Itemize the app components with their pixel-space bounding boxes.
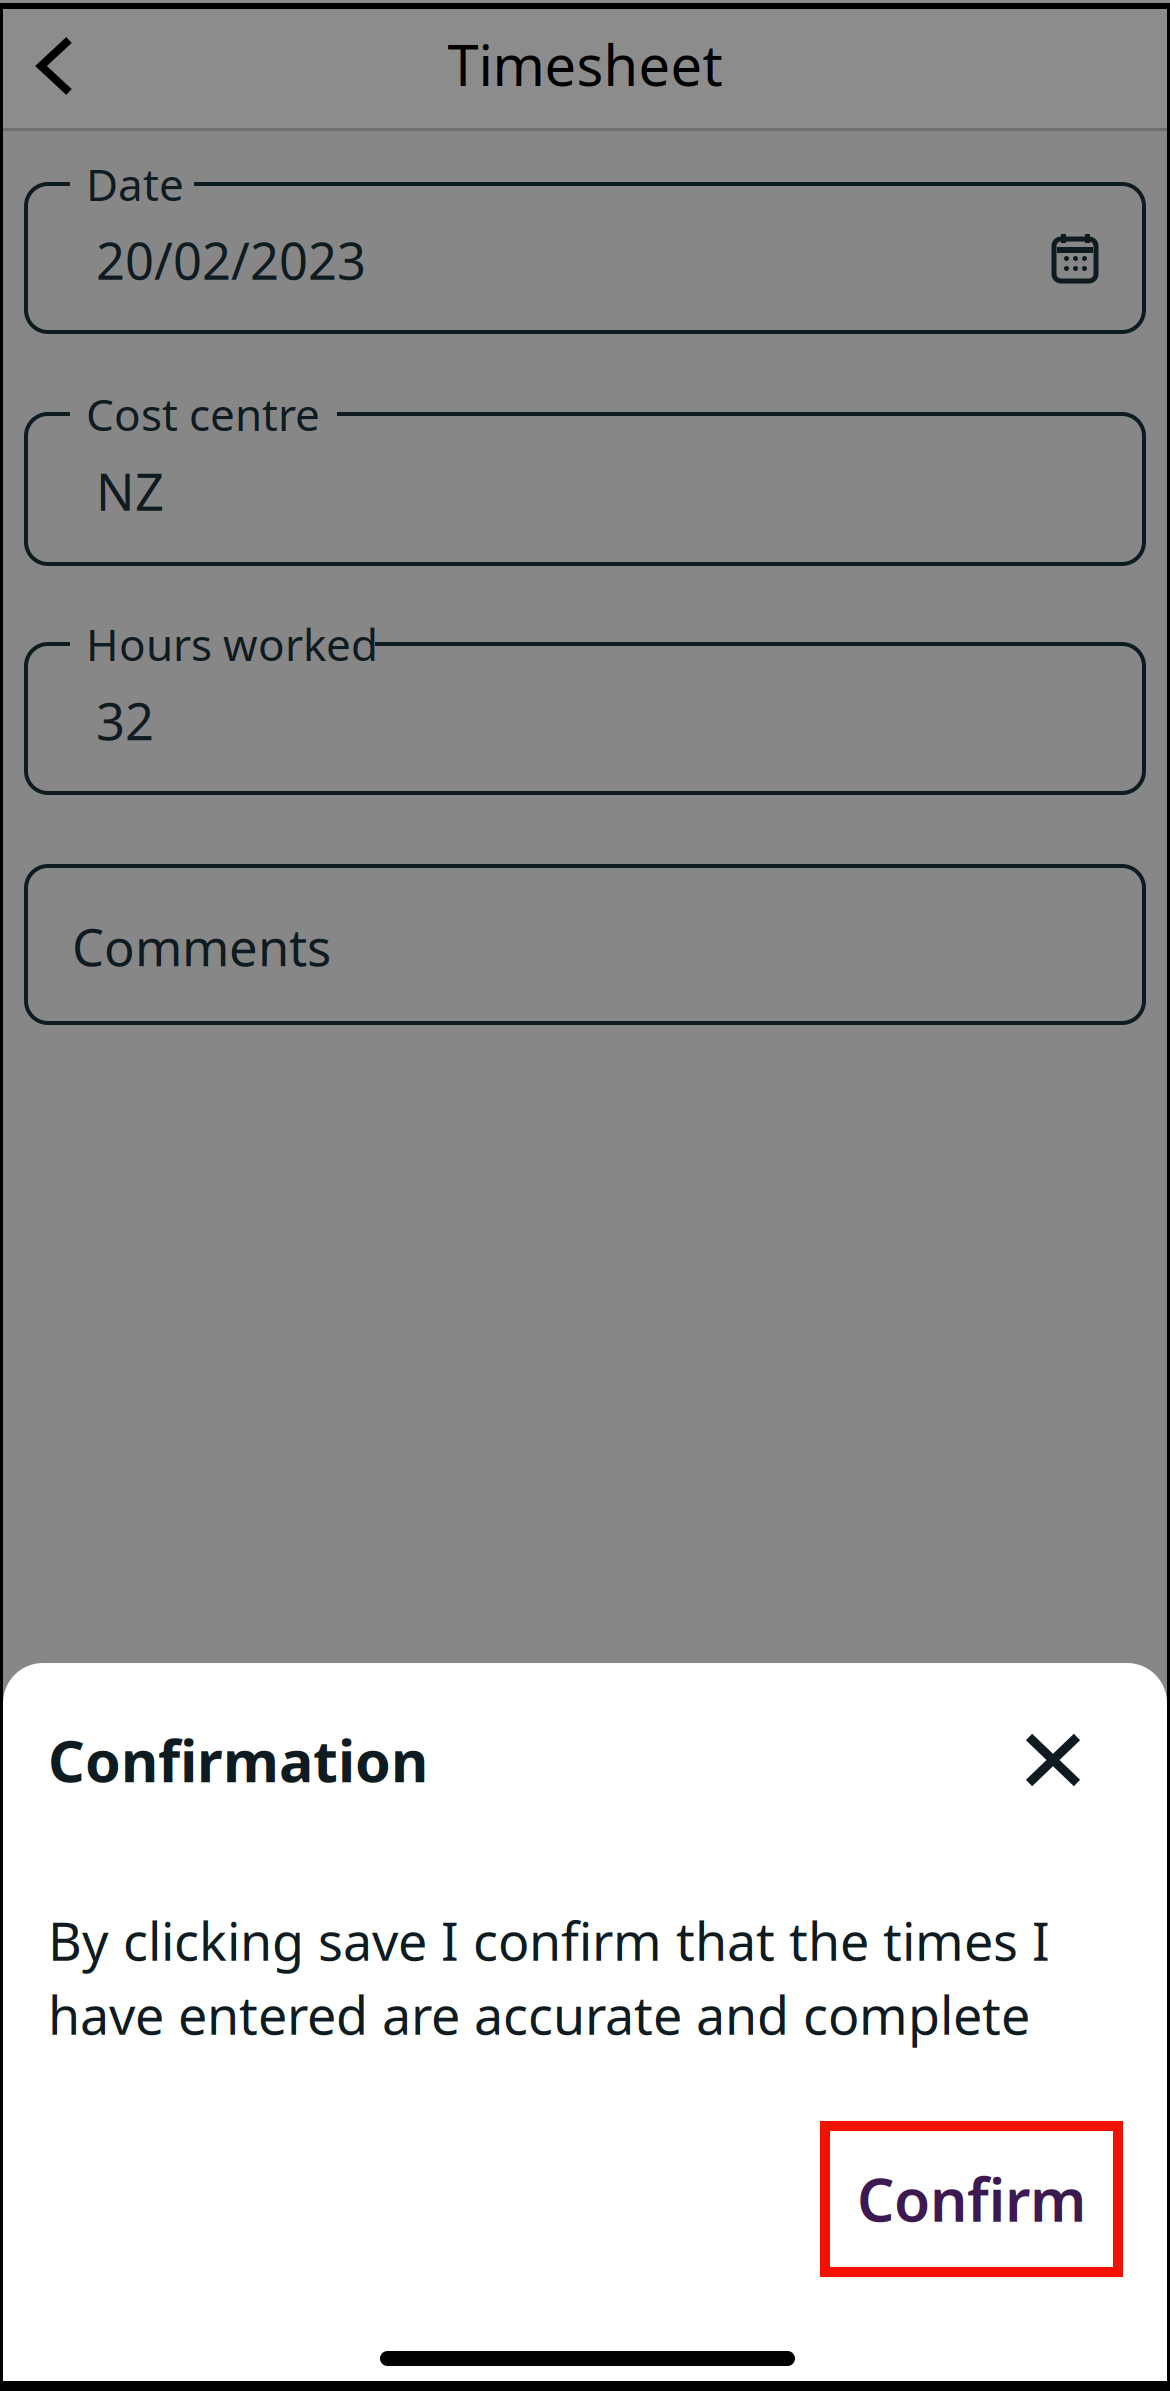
staticText: 32 <box>96 687 154 754</box>
staticText: NZ <box>96 457 164 525</box>
staticText: Hours worked <box>86 615 378 673</box>
staticText: Confirm <box>857 2160 1086 2238</box>
staticText: Cost centre <box>86 385 320 443</box>
staticText: By clicking save I confirm that the time… <box>48 1906 1050 1975</box>
button[interactable]: Confirm <box>825 2126 1118 2272</box>
staticText: Confirmation <box>48 1722 428 1798</box>
staticText: Comments <box>72 913 331 980</box>
button[interactable]: Back <box>3 10 111 122</box>
staticText: 20/02/2023 <box>96 226 366 294</box>
staticText: have entered are accurate and complete <box>48 1980 1030 2049</box>
staticText: Date <box>86 155 184 213</box>
button[interactable]: Close <box>1013 1721 1093 1799</box>
staticText: Timesheet <box>447 27 722 101</box>
